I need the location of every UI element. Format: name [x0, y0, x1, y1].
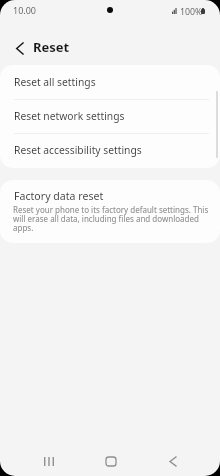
staticText: Reset all settings	[14, 75, 96, 89]
staticText: Reset accessibility settings	[14, 143, 142, 157]
button[interactable]: Recent apps	[32, 444, 66, 476]
button[interactable]: Reset all settings	[0, 65, 220, 99]
button[interactable]: Reset network settings	[0, 99, 220, 133]
staticText: Factory data reset	[14, 189, 104, 203]
staticText: Reset network settings	[14, 109, 125, 123]
staticText: 100%	[180, 6, 203, 18]
button[interactable]: Back	[156, 444, 190, 476]
staticText: Reset	[33, 38, 70, 56]
button[interactable]: Factory data reset	[0, 180, 220, 243]
button[interactable]: Reset accessibility settings	[0, 133, 220, 167]
button[interactable]: Home	[94, 444, 128, 476]
staticText: 10.00	[13, 4, 37, 16]
staticText: Reset your phone to its factory default …	[13, 204, 210, 234]
button[interactable]: Navigate up	[7, 36, 31, 60]
